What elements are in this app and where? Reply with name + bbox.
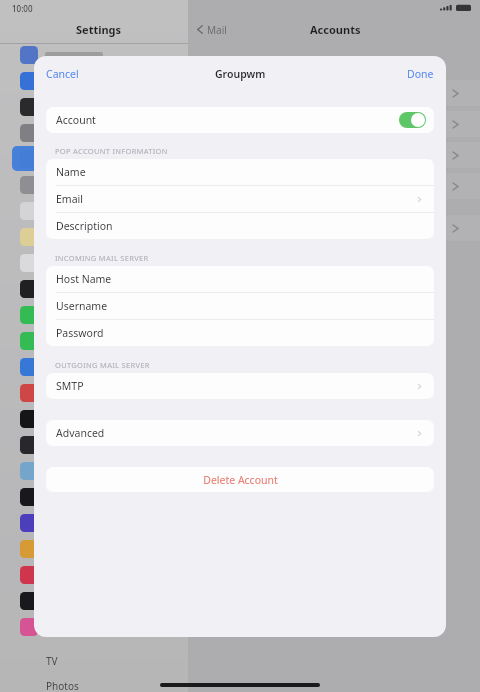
- staticText: Email: [56, 192, 83, 206]
- button[interactable]: Advanced: [46, 420, 434, 446]
- button[interactable]: Host Name: [46, 266, 434, 293]
- staticText: 10:00: [12, 3, 33, 14]
- staticText: TV: [46, 654, 58, 668]
- button[interactable]: Cancel: [42, 63, 83, 85]
- staticText: Settings: [76, 22, 122, 37]
- staticText: Delete Account: [203, 473, 278, 487]
- staticText: Done: [407, 67, 434, 81]
- staticText: Name: [56, 165, 86, 179]
- staticText: SMTP: [56, 379, 84, 393]
- staticText: Advanced: [56, 426, 105, 440]
- button[interactable]: SMTP: [46, 373, 434, 399]
- staticText: OUTGOING MAIL SERVER: [55, 360, 150, 370]
- staticText: Photos: [46, 679, 79, 692]
- staticText: Password: [56, 326, 104, 340]
- staticText: Mail: [207, 23, 227, 37]
- button[interactable]: Name: [46, 159, 434, 186]
- staticText: Description: [56, 219, 113, 233]
- staticText: Accounts: [310, 22, 361, 37]
- button[interactable]: Delete Account: [46, 467, 434, 492]
- staticText: Username: [56, 299, 108, 313]
- button[interactable]: Account: [46, 107, 434, 133]
- staticText: Account: [56, 113, 96, 127]
- staticText: Groupwm: [215, 67, 266, 81]
- staticText: Host Name: [56, 272, 112, 286]
- staticText: INCOMING MAIL SERVER: [55, 253, 149, 263]
- staticText: Cancel: [46, 67, 79, 81]
- button[interactable]: Description: [46, 213, 434, 239]
- button[interactable]: Password: [46, 320, 434, 346]
- staticText: POP ACCOUNT INFORMATION: [55, 146, 168, 156]
- button[interactable]: Account toggle: [399, 112, 426, 128]
- button[interactable]: Email: [46, 186, 434, 213]
- button[interactable]: Done: [403, 63, 438, 85]
- button[interactable]: Username: [46, 293, 434, 320]
